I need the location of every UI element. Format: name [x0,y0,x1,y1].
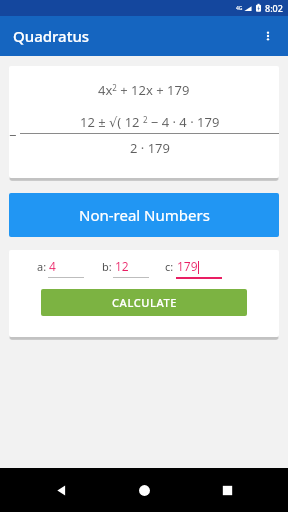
button[interactable]: a: [37,258,84,278]
staticText: 4x2 + 12x + 179 [98,81,190,99]
button[interactable]: Recent apps [205,468,249,512]
staticText: 8:02 [265,2,283,14]
staticText: 12 ± √( 12 2 − 4 · 4 · 179 [80,113,220,131]
staticText: 2 · 179 [130,139,170,157]
staticText: c: [165,259,177,274]
staticText: 4G [236,5,243,12]
button[interactable]: More options [248,16,288,56]
staticText: a: [37,259,49,274]
staticText: Non-real Numbers [79,205,210,225]
staticText: 179 [177,258,198,274]
staticText: − [9,126,20,144]
staticText: Quadratus [13,26,90,46]
button[interactable]: Home [122,468,166,512]
staticText: 4 [49,258,56,274]
button[interactable]: CALCULATE [41,289,247,316]
staticText: 12 [115,258,129,274]
button[interactable]: c: [165,258,222,279]
button[interactable]: Back [39,468,83,512]
staticText: b: [102,259,115,274]
button[interactable]: Non-real Numbers [9,193,279,237]
button[interactable]: b: [102,258,149,278]
staticText: CALCULATE [112,295,177,310]
